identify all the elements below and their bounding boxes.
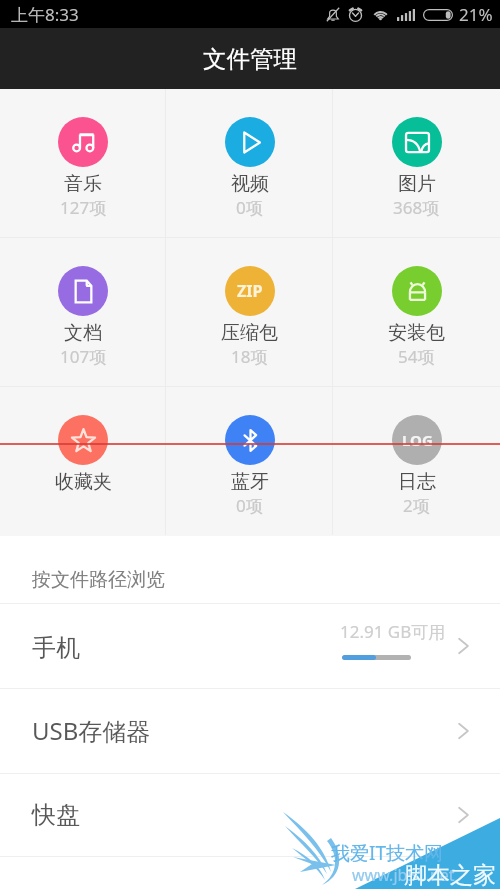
button[interactable]: 文档 <box>0 238 166 386</box>
staticText: 54项 <box>398 345 435 368</box>
staticText: 手机 <box>32 633 80 663</box>
button[interactable]: 手机 <box>0 604 500 688</box>
staticText: 蓝牙 <box>231 470 269 494</box>
staticText: 收藏夹 <box>55 470 112 494</box>
staticText: 18项 <box>231 345 268 368</box>
button[interactable]: ZIP <box>166 238 333 386</box>
button[interactable]: 音乐 <box>0 89 166 237</box>
staticText: 文档 <box>64 321 102 345</box>
staticText: 12.91 GB可用 <box>340 620 446 643</box>
staticText: www.jb51.net <box>352 864 455 886</box>
staticText: ZIP <box>237 280 263 302</box>
staticText: 上午8:33 <box>11 3 79 26</box>
staticText: 107项 <box>60 345 107 368</box>
staticText: 音乐 <box>64 172 102 196</box>
staticText: 快盘 <box>32 800 80 830</box>
button[interactable]: LOG <box>333 387 500 535</box>
staticText: 0项 <box>236 494 263 517</box>
staticText: 按文件路径浏览 <box>32 568 165 592</box>
button[interactable]: 安装包 <box>333 238 500 386</box>
staticText: 368项 <box>393 196 440 219</box>
staticText: 安装包 <box>388 321 445 345</box>
button[interactable]: USB存储器 <box>0 689 500 773</box>
button[interactable]: 快盘 <box>0 774 500 856</box>
staticText: 视频 <box>231 172 269 196</box>
staticText: 2项 <box>403 494 430 517</box>
button[interactable]: 蓝牙 <box>166 387 333 535</box>
staticText: 压缩包 <box>221 321 278 345</box>
button[interactable]: 图片 <box>333 89 500 237</box>
staticText: 图片 <box>398 172 436 196</box>
button[interactable]: 视频 <box>166 89 333 237</box>
staticText: 日志 <box>398 470 436 494</box>
staticText: USB存储器 <box>32 714 151 747</box>
staticText: 21% <box>459 3 493 26</box>
staticText: 127项 <box>60 196 107 219</box>
staticText: LOG <box>402 430 433 450</box>
button[interactable]: 收藏夹 <box>0 387 166 535</box>
staticText: 0项 <box>236 196 263 219</box>
staticText: 脚本之家 <box>404 861 496 889</box>
staticText: 我爱IT技术网 <box>331 840 444 866</box>
staticText: 文件管理 <box>203 44 297 74</box>
